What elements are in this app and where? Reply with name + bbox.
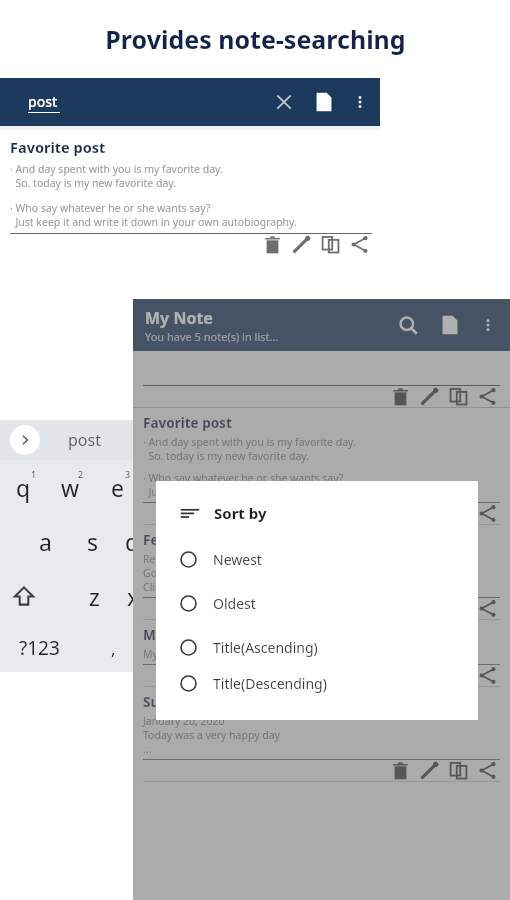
button[interactable]: New note xyxy=(438,313,462,337)
button[interactable]: New note xyxy=(312,90,336,114)
staticText: ?123 xyxy=(19,635,60,661)
button[interactable]: Share xyxy=(477,598,498,619)
button[interactable]: Title(Ascending) xyxy=(180,625,478,669)
staticText: Sort by xyxy=(214,503,267,523)
button[interactable]: Delete xyxy=(262,234,283,255)
button[interactable]: Share xyxy=(477,386,498,407)
button[interactable]: 1 xyxy=(0,460,47,514)
button[interactable]: 4 xyxy=(141,460,148,514)
staticText: Re Go Cli xyxy=(143,552,157,594)
staticText: My bank xyxy=(143,626,201,644)
button[interactable]: Newest xyxy=(180,537,478,581)
button[interactable]: More options xyxy=(350,92,370,112)
button[interactable]: Title(Descending) xyxy=(180,669,478,698)
button[interactable]: Suddenly.... xyxy=(133,687,510,782)
staticText: 3 xyxy=(125,468,131,480)
staticText: , xyxy=(111,637,116,660)
button[interactable]: Share xyxy=(477,665,498,686)
button[interactable]: 2 xyxy=(47,460,94,514)
staticText: Newest xyxy=(213,550,262,569)
staticText: Suddenly.... xyxy=(143,693,220,711)
button[interactable]: Oldest xyxy=(180,581,478,625)
button[interactable]: Copy xyxy=(448,760,469,781)
button[interactable]: More options xyxy=(478,315,498,335)
button[interactable]: Edit xyxy=(419,386,440,407)
staticText: You have 5 note(s) in list... xyxy=(145,329,279,344)
button[interactable]: Edit xyxy=(419,760,440,781)
staticText: Title(Descending) xyxy=(213,674,327,693)
button[interactable]: Fe xyxy=(133,525,510,620)
button[interactable]: Share xyxy=(477,760,498,781)
button[interactable]: Copy xyxy=(448,386,469,407)
button[interactable]: Favorite post xyxy=(133,408,510,525)
button[interactable]: Copy xyxy=(320,234,341,255)
staticText: s xyxy=(87,526,99,557)
button[interactable]: s xyxy=(69,514,116,568)
staticText: e xyxy=(111,472,124,503)
staticText: Oldest xyxy=(213,594,256,613)
staticText: x xyxy=(127,581,140,612)
staticText: post xyxy=(68,429,101,451)
button[interactable]: d xyxy=(116,514,148,568)
staticText: 1 xyxy=(31,468,37,480)
staticText: a xyxy=(39,526,52,557)
button[interactable]: Share xyxy=(349,234,370,255)
staticText: Provides note-searching xyxy=(105,22,406,56)
staticText: · And day spent with you is my favorite … xyxy=(143,435,356,463)
button[interactable]: x xyxy=(118,568,148,624)
staticText: · Who say whatever he or she wants say? … xyxy=(10,201,297,229)
button[interactable]: Delete xyxy=(390,760,411,781)
button[interactable]: 3 xyxy=(94,460,141,514)
staticText: post xyxy=(28,92,58,111)
button[interactable]: My bank xyxy=(133,620,510,687)
button[interactable]: Edit xyxy=(291,234,312,255)
staticText: 4 xyxy=(152,468,158,480)
button[interactable]: Search xyxy=(396,313,420,337)
button[interactable]: Delete xyxy=(390,386,411,407)
staticText: My Note xyxy=(145,307,213,329)
button[interactable]: ?123 xyxy=(8,624,70,672)
button[interactable]: Emoji xyxy=(146,631,148,665)
staticText: Title(Ascending) xyxy=(213,638,318,657)
staticText: q xyxy=(16,472,31,503)
staticText: w xyxy=(61,472,80,503)
staticText: Favorite post xyxy=(143,414,232,432)
staticText: My bank number : 111-1234-12345 xyxy=(143,647,315,661)
staticText: January 20, 2020 Today was a very happy … xyxy=(143,714,280,756)
button[interactable]: Clear xyxy=(272,90,296,114)
button[interactable]: Expand xyxy=(10,425,40,455)
button[interactable]: Share xyxy=(477,503,498,524)
staticText: Favorite post xyxy=(10,137,106,157)
staticText: 2 xyxy=(78,468,84,480)
staticText: r xyxy=(141,472,148,503)
staticText: Fe xyxy=(143,531,159,549)
staticText: · And day spent with you is my favorite … xyxy=(10,162,223,190)
button[interactable]: a xyxy=(22,514,69,568)
button[interactable]: , xyxy=(98,624,128,672)
staticText: · Who say whatever he or she wants say? … xyxy=(143,471,344,499)
staticText: d xyxy=(125,526,140,557)
button[interactable]: z xyxy=(71,568,118,624)
staticText: z xyxy=(89,581,100,612)
button[interactable]: Shift xyxy=(0,568,47,624)
